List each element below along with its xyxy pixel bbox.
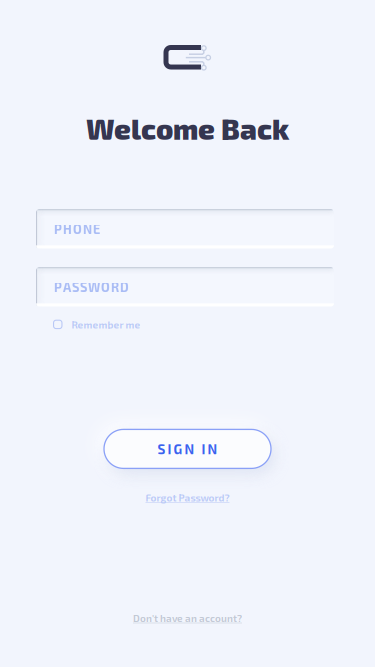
button[interactable]: Don't have an account? — [117, 604, 258, 667]
staticText: Welcome Back — [86, 111, 289, 145]
staticText: P A S S W O R D — [54, 279, 129, 295]
staticText: P H O N E — [54, 221, 100, 237]
staticText: Remember me — [71, 318, 140, 330]
staticText: Don't have an account? — [133, 612, 242, 624]
staticText: S I G N I N — [157, 441, 217, 457]
staticText: Forgot Password? — [145, 491, 229, 503]
button[interactable]: Remember me — [0, 306, 375, 336]
button[interactable]: S I G N I N — [104, 429, 271, 468]
button[interactable]: Forgot Password? — [129, 468, 245, 509]
